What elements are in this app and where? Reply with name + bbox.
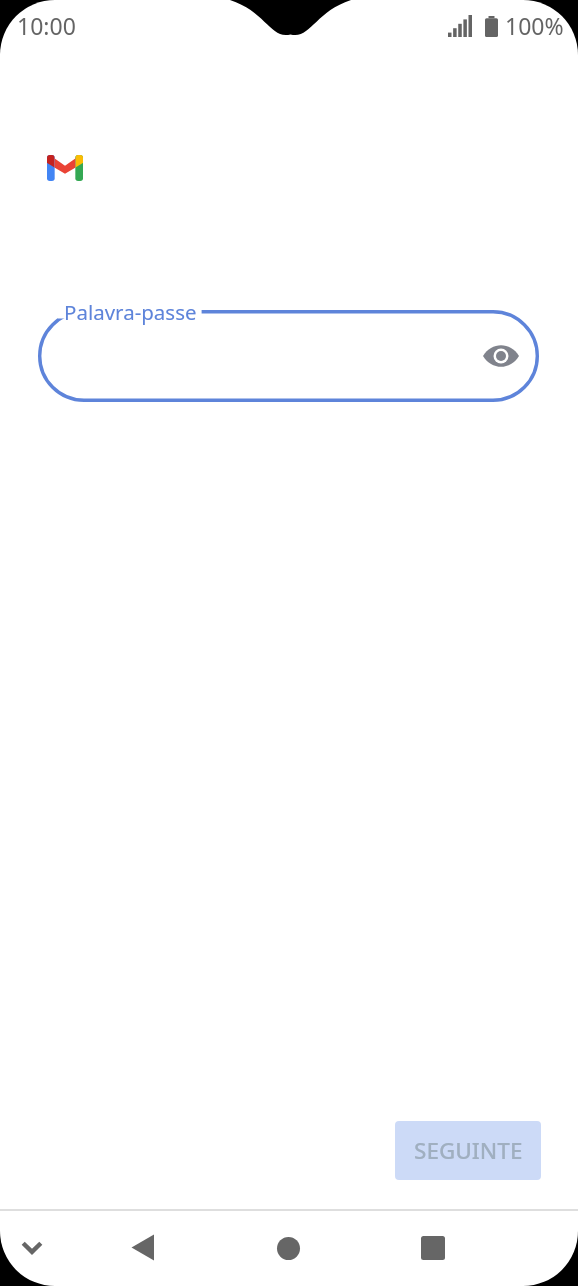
staticText: SEGUINTE [414,1135,523,1166]
button[interactable]: SEGUINTE [395,1121,541,1180]
button[interactable]: Show password [477,332,525,380]
staticText: Palavra-passe [64,298,197,326]
button[interactable]: Hide keyboard [0,1209,70,1285]
button[interactable]: Recents [395,1210,471,1286]
button[interactable]: Palavra-passe [38,310,539,402]
button[interactable]: Back [104,1209,180,1285]
staticText: 100% [505,10,564,41]
button[interactable]: Home [250,1210,326,1286]
staticText: 10:00 [17,10,76,41]
